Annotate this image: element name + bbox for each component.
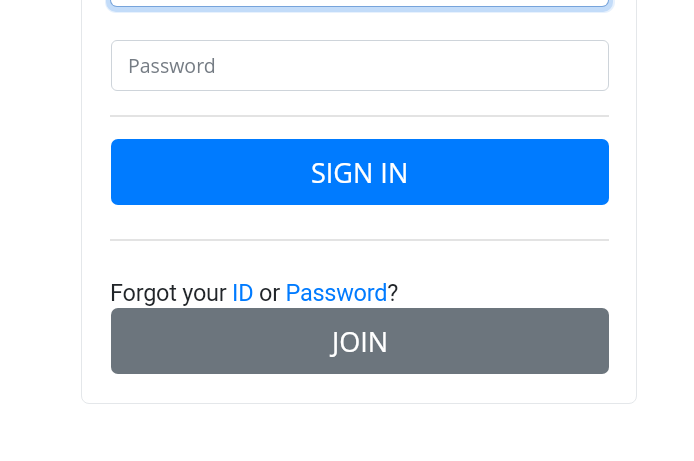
- button[interactable]: Forgot your ID or Password?: [110, 279, 399, 307]
- staticText: SIGN IN: [311, 154, 409, 191]
- button[interactable]: Password: [111, 40, 609, 91]
- button[interactable]: JOIN: [111, 308, 609, 374]
- staticText: JOIN: [332, 323, 389, 360]
- staticText: Password: [128, 52, 216, 79]
- button[interactable]: SIGN IN: [111, 139, 609, 205]
